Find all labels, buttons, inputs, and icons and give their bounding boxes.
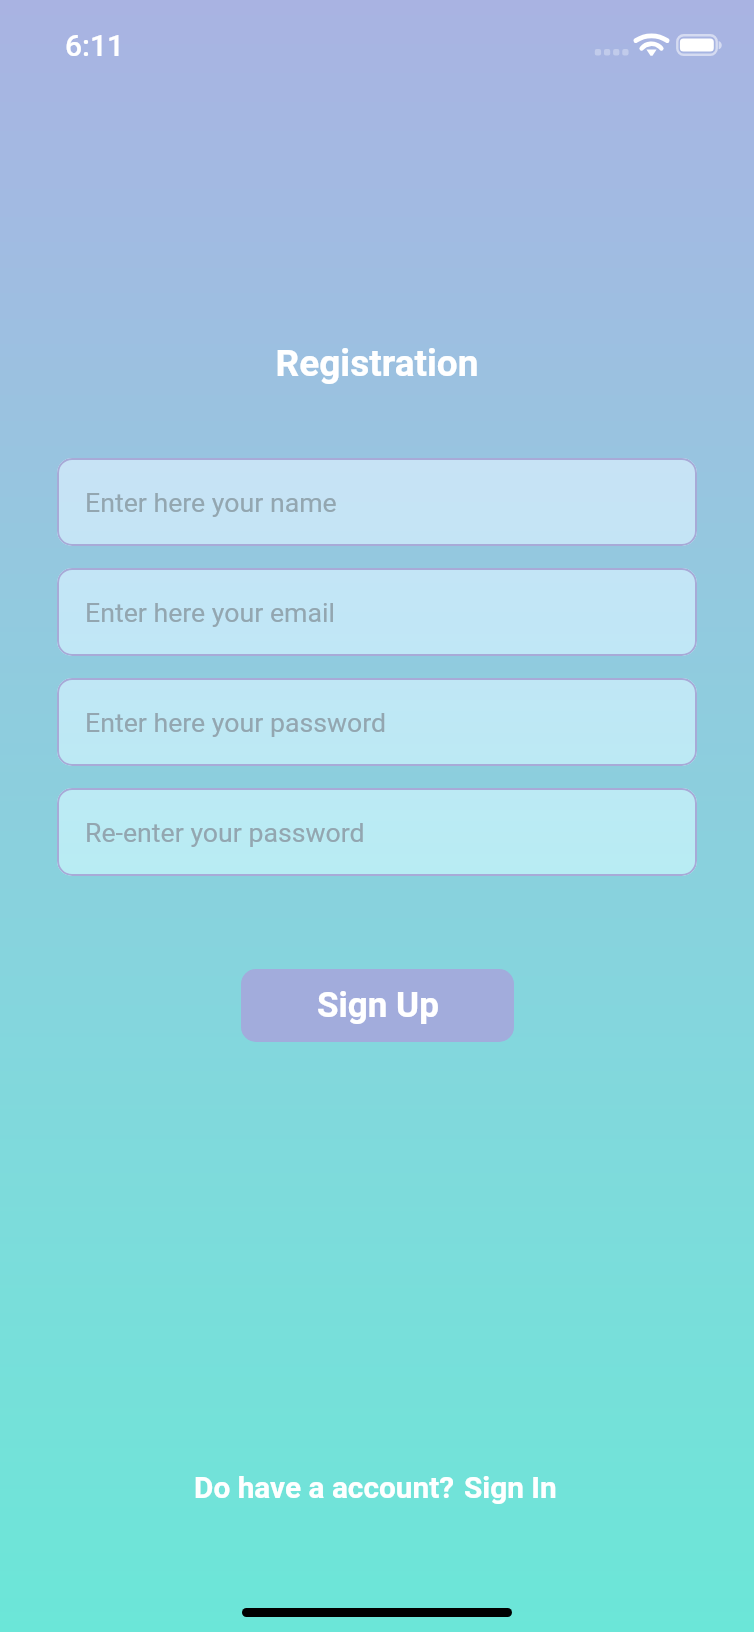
button[interactable]: Re-enter your password bbox=[57, 788, 697, 876]
staticText: 6:11 bbox=[65, 28, 125, 63]
staticText: Sign In bbox=[464, 1470, 557, 1505]
other: Signal, Wi-Fi and battery status bbox=[590, 28, 730, 62]
button[interactable]: Sign In bbox=[460, 1466, 561, 1509]
staticText: Sign Up bbox=[317, 985, 439, 1026]
button[interactable]: Enter here your email bbox=[57, 568, 697, 656]
button[interactable]: Enter here your password bbox=[57, 678, 697, 766]
staticText: Registration bbox=[0, 342, 754, 385]
staticText: Enter here your email bbox=[85, 597, 335, 628]
button[interactable]: Enter here your name bbox=[57, 458, 697, 546]
staticText: Re-enter your password bbox=[85, 817, 365, 848]
staticText: Do have a account? bbox=[194, 1470, 455, 1505]
staticText: Enter here your name bbox=[85, 487, 337, 518]
button[interactable]: Sign Up bbox=[241, 969, 514, 1042]
staticText: Enter here your password bbox=[85, 707, 387, 738]
